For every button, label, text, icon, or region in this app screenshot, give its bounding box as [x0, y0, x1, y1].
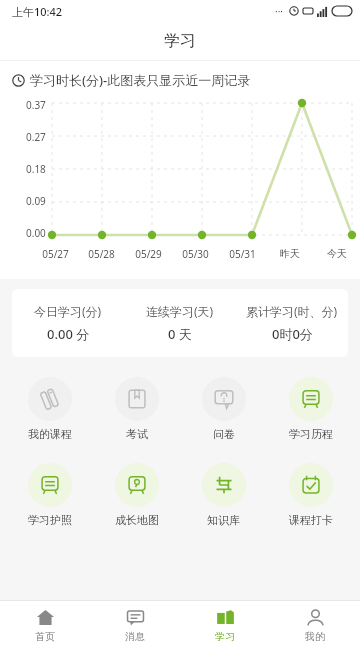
staticText: 学习护照 — [28, 513, 72, 527]
staticText: 昨天 — [280, 247, 300, 260]
button[interactable]: 问卷 — [180, 373, 267, 445]
staticText: 0.18 — [26, 162, 46, 176]
staticText: 我的 — [305, 630, 325, 643]
staticText: 今天 — [327, 247, 347, 260]
staticText: 学习历程 — [289, 427, 333, 441]
staticText: ··· — [275, 4, 284, 18]
button[interactable]: 首页 — [0, 601, 90, 650]
staticText: 累计学习(时、分) — [246, 303, 338, 319]
button[interactable]: 消息 — [90, 601, 180, 650]
staticText: 上午10:42 — [12, 4, 63, 19]
button[interactable]: 知识库 — [180, 459, 267, 531]
staticText: 0.27 — [26, 130, 46, 144]
button[interactable]: 学习历程 — [267, 373, 354, 445]
staticText: 今日学习(分) — [34, 303, 102, 319]
button[interactable]: 成长地图 — [93, 459, 180, 531]
button[interactable]: 学习护照 — [6, 459, 93, 531]
staticText: 学习 — [164, 31, 196, 51]
staticText: 首页 — [35, 630, 55, 643]
staticText: 05/31 — [229, 247, 256, 261]
staticText: 学习时长(分)-此图表只显示近一周记录 — [30, 71, 251, 89]
button[interactable]: 考试 — [93, 373, 180, 445]
button[interactable]: 课程打卡 — [267, 459, 354, 531]
button[interactable]: 我的课程 — [6, 373, 93, 445]
staticText: 问卷 — [213, 427, 235, 441]
staticText: 我的课程 — [28, 427, 72, 441]
button[interactable]: 我的 — [270, 601, 360, 650]
staticText: 课程打卡 — [289, 513, 333, 527]
staticText: 0.37 — [26, 98, 46, 112]
staticText: 知识库 — [207, 513, 240, 527]
staticText: 考试 — [126, 427, 148, 441]
staticText: 消息 — [125, 630, 145, 643]
staticText: 学习 — [215, 630, 235, 643]
staticText: 05/30 — [182, 247, 209, 261]
staticText: 0 天 — [168, 325, 192, 343]
staticText: 0.09 — [26, 194, 46, 208]
staticText: 0.00 分 — [47, 325, 90, 343]
staticText: 05/28 — [88, 247, 115, 261]
staticText: 05/29 — [135, 247, 162, 261]
staticText: 连续学习(天) — [146, 303, 214, 319]
staticText: 0时0分 — [272, 325, 313, 343]
staticText: 05/27 — [42, 247, 69, 261]
staticText: 成长地图 — [115, 513, 159, 527]
button[interactable]: 学习 — [180, 601, 270, 650]
staticText: 0.00 — [26, 226, 46, 240]
